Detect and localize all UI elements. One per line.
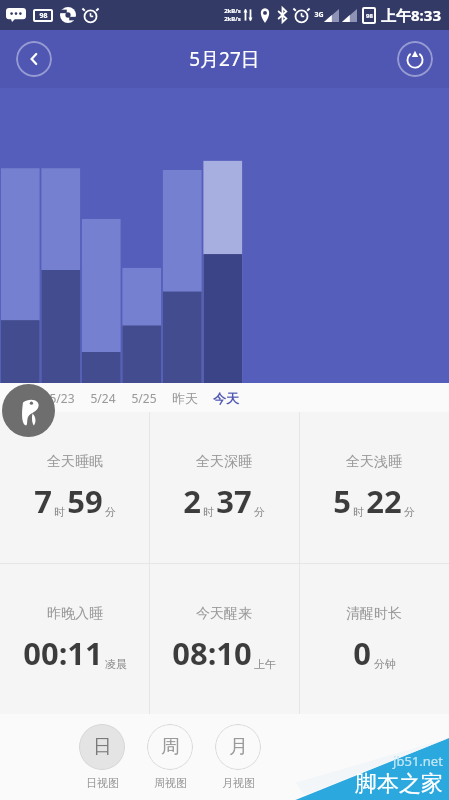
button[interactable]: 全天睡眠 [0,412,149,563]
staticText: 分 [404,505,415,519]
staticText: 日 [93,735,112,759]
staticText: 脚本之家 [355,770,443,798]
button[interactable]: 月 [215,724,261,790]
button[interactable]: 日 [79,724,125,790]
staticText: 7 [34,480,52,522]
staticText: 5/22 [8,390,34,406]
staticText: 时 [353,505,364,519]
staticText: 5/25 [131,390,157,406]
staticText: 5/23 [49,390,75,406]
staticText: 昨天 [172,390,198,406]
staticText: 5/24 [90,390,116,406]
button[interactable]: Back [16,41,52,77]
staticText: 2kB/s [224,7,241,15]
staticText: 37 [216,480,252,522]
staticText: 08:10 [172,632,252,674]
staticText: jb51.net [393,752,443,770]
button[interactable]: Sync [397,41,433,77]
staticText: 5 [333,480,351,522]
staticText: 22 [366,480,402,522]
staticText: 00:11 [23,632,103,674]
staticText: 2 [183,480,201,522]
staticText: 0 [353,632,371,674]
staticText: 月视图 [222,776,255,790]
staticText: 3G [314,10,324,20]
staticText: 5月27日 [189,46,260,72]
staticText: 昨晚入睡 [47,605,103,623]
staticText: 今天醒来 [196,605,252,623]
staticText: 上午8:33 [381,5,441,25]
staticText: 2kB/s [224,15,241,23]
staticText: 分 [105,505,116,519]
staticText: 分 [254,505,265,519]
staticText: 时 [54,505,65,519]
staticText: 59 [67,480,103,522]
staticText: 分钟 [374,657,396,671]
button[interactable]: 昨晚入睡 [0,564,149,714]
staticText: 凌晨 [105,657,127,671]
staticText: 周 [161,735,180,759]
staticText: 清醒时长 [346,605,402,623]
button[interactable]: 全天深睡 [149,412,299,563]
button[interactable]: 全天浅睡 [299,412,449,563]
staticText: 全天浅睡 [346,453,402,471]
staticText: 98 [39,11,48,21]
staticText: 98 [366,12,373,20]
staticText: 月 [229,735,248,759]
button[interactable]: 今天醒来 [149,564,299,714]
staticText: 上午 [254,657,276,671]
staticText: 日视图 [86,776,119,790]
staticText: 全天深睡 [196,453,252,471]
staticText: 周视图 [154,776,187,790]
staticText: 全天睡眠 [47,453,103,471]
staticText: 今天 [213,390,239,406]
button[interactable]: 周 [147,724,193,790]
staticText: 时 [203,505,214,519]
button[interactable]: 清醒时长 [299,564,449,714]
